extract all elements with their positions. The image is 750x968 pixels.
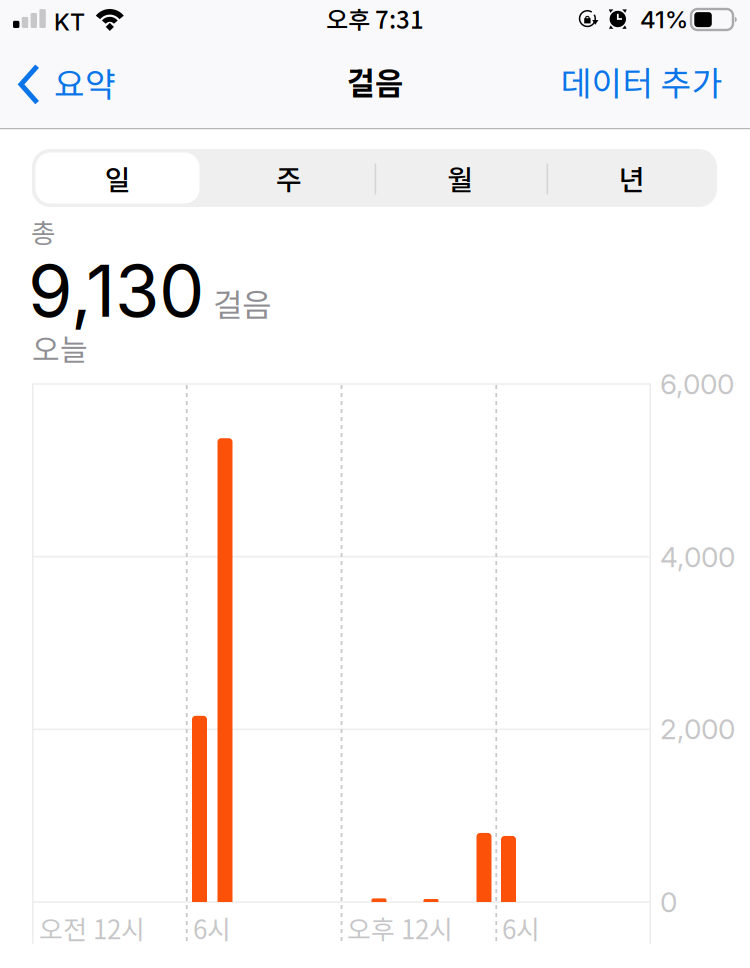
staticText: 오전 12시 [39,909,145,947]
staticText: 데이터 추가 [560,57,722,105]
staticText: 년 [618,158,644,198]
staticText: 41% [640,5,688,34]
staticText: 총 [31,212,56,251]
staticText: 0 [660,885,677,919]
staticText: 6시 [502,909,540,947]
staticText: 오후 7:31 [326,1,424,36]
button[interactable]: 일 [32,149,203,207]
staticText: 6,000 [660,367,734,401]
staticText: 9,130 [28,247,204,334]
staticText: 2,000 [660,712,735,746]
staticText: 걸음 [213,280,271,326]
button[interactable]: 월 [374,149,546,207]
staticText: 4,000 [660,540,735,574]
button[interactable]: 주 [203,149,374,207]
staticText: 오늘 [32,326,88,369]
staticText: 월 [447,158,473,198]
staticText: 일 [105,158,131,198]
staticText: 오후 12시 [347,909,453,947]
button[interactable]: 년 [546,149,717,207]
button[interactable]: 데이터 추가 [551,49,732,113]
button[interactable]: 요약으로 돌아가기 [16,58,136,122]
staticText: 걸음 [347,59,403,103]
staticText: KT [54,8,85,36]
staticText: 6시 [193,909,231,947]
staticText: 요약 [54,58,116,106]
staticText: 주 [276,158,302,198]
